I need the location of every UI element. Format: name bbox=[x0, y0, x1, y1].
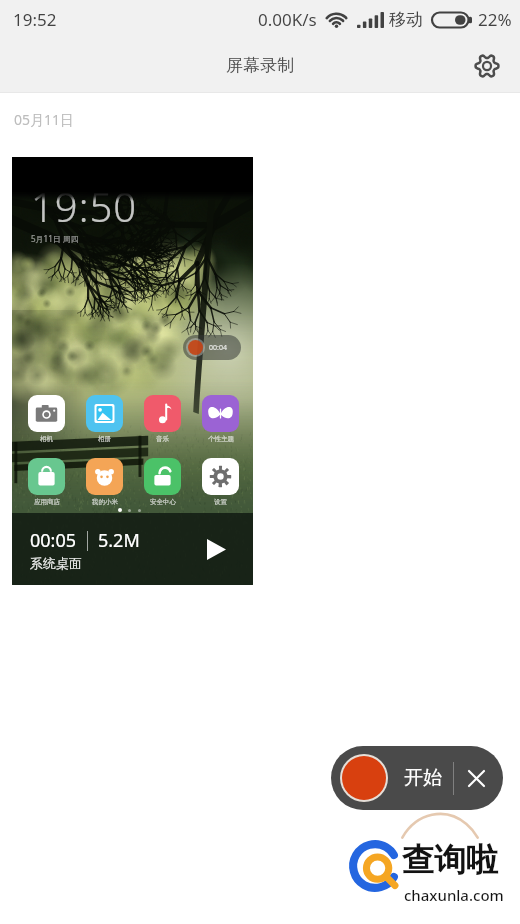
button[interactable] bbox=[86, 395, 123, 432]
staticText: 19:52 bbox=[13, 8, 57, 31]
staticText: 相册 bbox=[98, 435, 111, 443]
staticText: 查询啦 bbox=[402, 840, 498, 880]
button[interactable]: 19:50 bbox=[12, 157, 253, 585]
staticText: 屏幕录制 bbox=[226, 55, 294, 76]
staticText: 5月11日 周四 bbox=[31, 233, 79, 244]
button[interactable] bbox=[144, 395, 181, 432]
button[interactable]: Play bbox=[199, 532, 233, 566]
staticText: 系统桌面 bbox=[30, 555, 82, 571]
staticText: 安全中心 bbox=[150, 498, 176, 506]
staticText: 个性主题 bbox=[208, 435, 234, 443]
staticText: 应用商店 bbox=[34, 498, 60, 506]
staticText: 相机 bbox=[40, 435, 53, 443]
staticText: chaxunla.com bbox=[404, 885, 504, 905]
button[interactable] bbox=[28, 458, 65, 495]
button[interactable]: Settings bbox=[467, 46, 507, 86]
staticText: 05月11日 bbox=[14, 110, 75, 129]
staticText: 19:50 bbox=[31, 179, 138, 233]
staticText: 22% bbox=[478, 8, 512, 31]
button[interactable] bbox=[28, 395, 65, 432]
staticText: 5.2M bbox=[98, 528, 140, 553]
staticText: 音乐 bbox=[156, 435, 169, 443]
staticText: 00:05 bbox=[30, 528, 77, 553]
staticText: 开始 bbox=[404, 766, 442, 790]
staticText: 移动 bbox=[389, 9, 423, 30]
button[interactable] bbox=[202, 395, 239, 432]
staticText: 00:04 bbox=[209, 343, 227, 353]
button[interactable] bbox=[202, 458, 239, 495]
staticText: 0.00K/s bbox=[258, 8, 317, 31]
staticText: 设置 bbox=[214, 498, 227, 506]
button[interactable] bbox=[86, 458, 123, 495]
staticText: 我的小米 bbox=[92, 498, 118, 506]
button[interactable]: Start recording bbox=[342, 756, 386, 800]
button[interactable]: Start recording bbox=[331, 746, 503, 810]
button[interactable]: Close bbox=[461, 763, 491, 793]
button[interactable] bbox=[144, 458, 181, 495]
